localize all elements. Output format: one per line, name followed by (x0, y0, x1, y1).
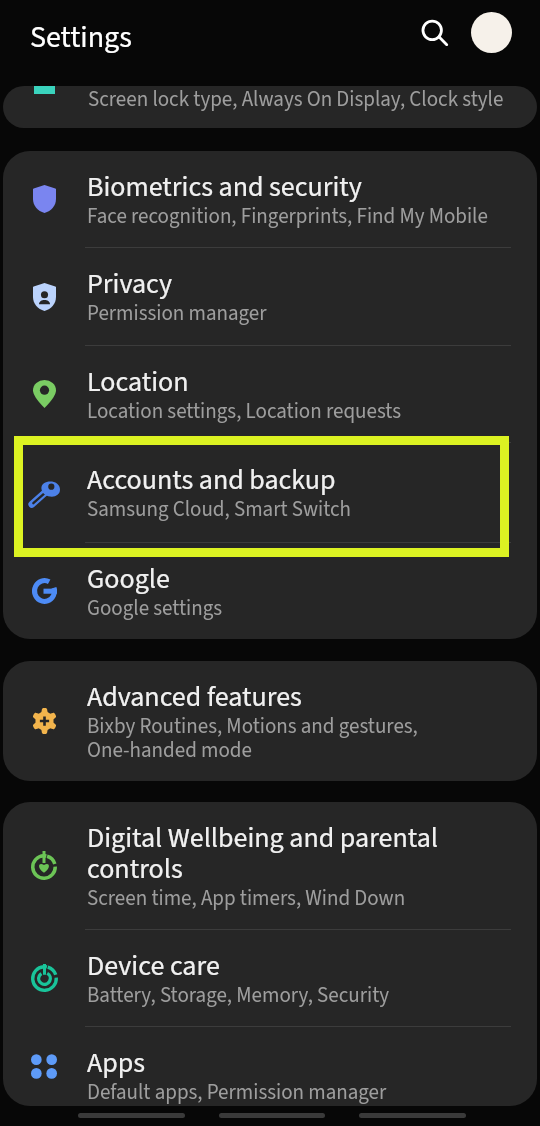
staticText: Screen lock type, Always On Display, Clo… (88, 89, 504, 113)
staticText: Default apps, Permission manager (87, 1082, 387, 1106)
button[interactable]: Google (3, 543, 537, 639)
staticText: Biometrics and security (87, 174, 362, 205)
button[interactable]: Location (3, 346, 537, 442)
staticText: Device care (87, 953, 220, 984)
staticText: Settings (30, 16, 132, 59)
staticText: Location (87, 369, 189, 400)
staticText: Privacy (87, 271, 173, 302)
staticText: Samsung Cloud, Smart Switch (87, 499, 352, 523)
button[interactable]: Account (471, 12, 512, 53)
button[interactable]: Device care (3, 930, 537, 1026)
staticText: Bixby Routines, Motions and gestures, On… (87, 716, 418, 764)
button[interactable]: Screen lock type, Always On Display, Clo… (3, 86, 537, 128)
staticText: Apps (87, 1050, 145, 1081)
button[interactable]: Accounts and backup (3, 443, 537, 542)
staticText: Permission manager (87, 303, 267, 327)
button[interactable]: Search (413, 12, 456, 55)
staticText: Face recognition, Fingerprints, Find My … (87, 206, 488, 230)
staticText: Google settings (87, 598, 223, 622)
button[interactable]: Back (359, 1113, 466, 1118)
staticText: Accounts and backup (87, 467, 336, 498)
button[interactable]: Biometrics and security (3, 151, 537, 247)
staticText: Digital Wellbeing and parental controls (87, 825, 438, 887)
button[interactable]: Digital Wellbeing and parental controls (3, 802, 537, 929)
staticText: Screen time, App timers, Wind Down (87, 888, 406, 912)
button[interactable]: Advanced features (3, 661, 537, 781)
staticText: Location settings, Location requests (87, 401, 401, 425)
button[interactable]: Home (219, 1113, 325, 1118)
button[interactable]: Recents (78, 1113, 185, 1118)
staticText: Advanced features (87, 684, 302, 715)
staticText: Google (87, 566, 170, 597)
staticText: Battery, Storage, Memory, Security (87, 985, 390, 1009)
button[interactable]: Privacy (3, 248, 537, 345)
button[interactable]: Apps (3, 1027, 537, 1106)
